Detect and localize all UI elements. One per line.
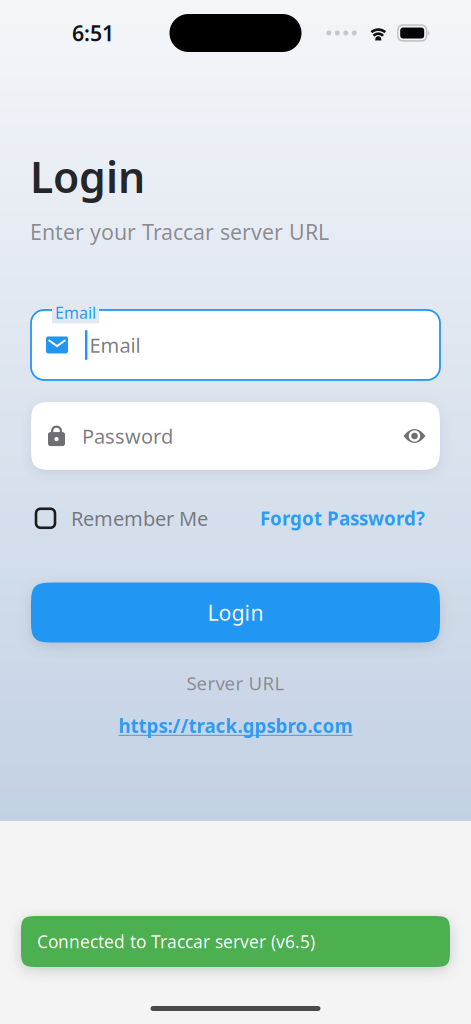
staticText: Email bbox=[55, 302, 96, 323]
staticText: Email bbox=[89, 332, 140, 358]
button[interactable]: Remember Me bbox=[36, 505, 208, 532]
staticText: Login bbox=[30, 148, 145, 205]
button[interactable]: Login bbox=[31, 582, 440, 642]
staticText: Forgot Password? bbox=[260, 506, 425, 531]
staticText: Server URL bbox=[186, 670, 284, 695]
staticText: Password bbox=[82, 423, 173, 449]
staticText: Remember Me bbox=[71, 505, 208, 532]
staticText: Enter your Traccar server URL bbox=[30, 218, 329, 246]
button[interactable]: https://track.gpsbro.com bbox=[0, 713, 471, 738]
staticText: 6:51 bbox=[72, 19, 114, 47]
staticText: Login bbox=[207, 598, 263, 627]
button[interactable]: Show password bbox=[403, 427, 426, 444]
button[interactable]: Forgot Password? bbox=[260, 506, 425, 531]
staticText: https://track.gpsbro.com bbox=[118, 713, 352, 738]
staticText: Connected to Traccar server (v6.5) bbox=[37, 930, 315, 953]
